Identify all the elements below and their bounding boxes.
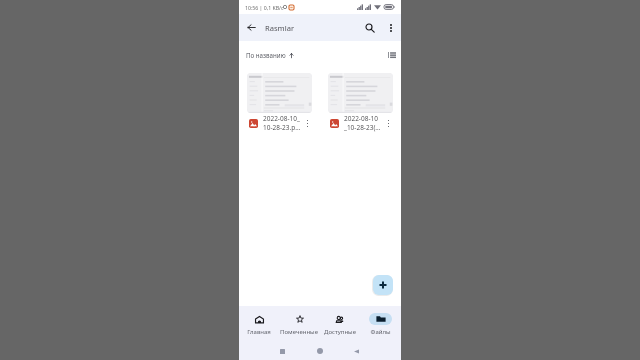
staticText: Доступные: [324, 328, 356, 336]
staticText: 2022-08-10_: [263, 114, 300, 123]
button[interactable]: Файлы: [360, 306, 401, 343]
button[interactable]: File options: [303, 119, 312, 128]
button[interactable]: Back: [350, 345, 362, 357]
button[interactable]: Search: [362, 20, 378, 36]
staticText: Файлы: [370, 328, 391, 336]
button[interactable]: По названию: [246, 51, 294, 59]
staticText: _10-28-23(…: [344, 123, 381, 132]
button[interactable]: 2022-08-10_: [247, 73, 312, 132]
staticText: Помеченные: [280, 328, 318, 336]
staticText: 10:56 | 0,1 KB/c: [245, 4, 284, 11]
button[interactable]: Помеченные: [279, 306, 319, 343]
button[interactable]: Add: [373, 275, 393, 295]
button[interactable]: 2022-08-10: [328, 73, 393, 132]
button[interactable]: More options: [384, 21, 398, 35]
staticText: Главная: [247, 328, 271, 336]
button[interactable]: Recents: [276, 345, 288, 357]
button[interactable]: Back: [244, 20, 259, 35]
staticText: 2022-08-10: [344, 114, 378, 123]
staticText: 10-28-23.p…: [263, 123, 301, 132]
button[interactable]: File options: [384, 119, 393, 128]
button[interactable]: Switch view: [386, 49, 398, 61]
staticText: Rasmlar: [265, 23, 295, 33]
staticText: По названию: [246, 51, 286, 59]
button[interactable]: Доступные: [319, 306, 360, 343]
button[interactable]: Главная: [239, 306, 279, 343]
button[interactable]: Home: [314, 345, 326, 357]
